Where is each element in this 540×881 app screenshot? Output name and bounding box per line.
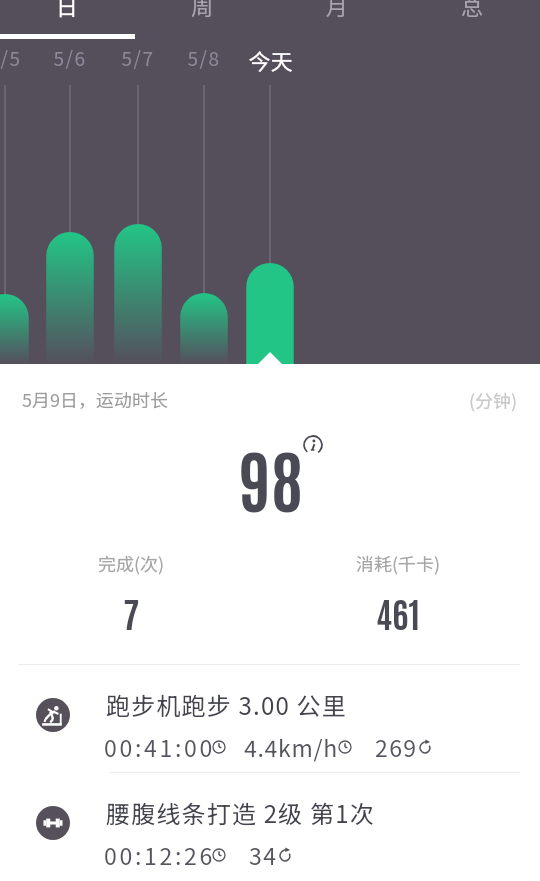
button[interactable]: 日 — [0, 0, 135, 40]
button[interactable]: 总 — [405, 0, 540, 40]
button[interactable]: 5/7 — [98, 44, 178, 72]
staticText: 跑步机跑步 3.00 公里 — [106, 687, 347, 722]
staticText: 98 — [239, 432, 304, 521]
button[interactable]: 5/8 — [164, 44, 244, 72]
staticText: 今天 — [248, 44, 293, 72]
button[interactable]: 周 — [135, 0, 270, 40]
staticText: 5/8 — [187, 44, 221, 72]
staticText: (分钟) — [469, 387, 518, 413]
staticText: 7 — [123, 590, 140, 635]
staticText: 5/5 — [0, 44, 22, 72]
button[interactable]: 消耗(千卡) — [318, 550, 478, 642]
staticText: 腰腹线条打造 2级 第1次 — [106, 795, 375, 830]
staticText: 5月9日，运动时长 — [22, 386, 168, 412]
staticText: 00:12:26 — [104, 838, 215, 871]
button[interactable]: 月 — [270, 0, 405, 40]
staticText: 消耗(千卡) — [356, 550, 441, 576]
staticText: 269 — [375, 730, 418, 763]
staticText: 4.4km/h — [244, 730, 338, 763]
staticText: 总 — [461, 0, 484, 21]
staticText: 00:41:00 — [104, 730, 215, 763]
staticText: 月 — [326, 0, 349, 21]
button[interactable]: Info — [302, 434, 324, 456]
button[interactable]: 5/5 — [0, 44, 45, 72]
staticText: 34 — [249, 838, 278, 871]
staticText: 5/6 — [53, 44, 87, 72]
staticText: 5/7 — [121, 44, 155, 72]
button[interactable]: 腰腹线条打造 2级 第1次 — [0, 773, 540, 880]
button[interactable]: 跑步机跑步 3.00 公里 — [0, 665, 540, 772]
button[interactable]: 完成(次) — [51, 550, 211, 642]
button[interactable]: 5/6 — [30, 44, 110, 72]
staticText: 日 — [56, 0, 79, 21]
button[interactable]: 今天 — [230, 44, 310, 72]
staticText: 完成(次) — [98, 550, 165, 576]
staticText: 周 — [191, 0, 214, 21]
staticText: 461 — [376, 590, 421, 635]
